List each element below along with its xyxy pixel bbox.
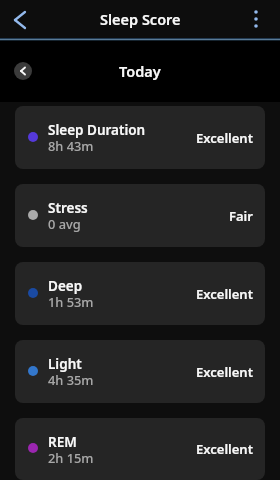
staticText: Fair xyxy=(229,207,253,225)
button[interactable]: Back xyxy=(5,5,34,34)
staticText: Light xyxy=(48,355,82,373)
staticText: Excellent xyxy=(196,129,253,147)
button[interactable]: Light xyxy=(15,340,265,403)
staticText: Deep xyxy=(48,277,83,295)
staticText: 0 avg xyxy=(48,215,81,232)
button[interactable]: Stress xyxy=(15,184,265,247)
staticText: 1h 53m xyxy=(48,293,94,310)
button[interactable]: More options xyxy=(241,4,271,34)
staticText: Excellent xyxy=(196,363,253,381)
staticText: 4h 35m xyxy=(48,371,94,388)
staticText: Excellent xyxy=(196,285,253,303)
staticText: 2h 15m xyxy=(48,449,94,466)
staticText: REM xyxy=(48,433,77,451)
staticText: Sleep Duration xyxy=(48,121,146,139)
staticText: Sleep Score xyxy=(100,9,181,29)
button[interactable]: REM xyxy=(15,418,265,480)
staticText: 8h 43m xyxy=(48,137,94,154)
staticText: Stress xyxy=(48,199,88,217)
button[interactable]: Sleep Duration xyxy=(15,106,265,169)
staticText: Excellent xyxy=(196,440,253,458)
button[interactable]: Deep xyxy=(15,262,265,325)
staticText: Today xyxy=(119,61,161,81)
button[interactable]: Previous day xyxy=(14,62,32,80)
